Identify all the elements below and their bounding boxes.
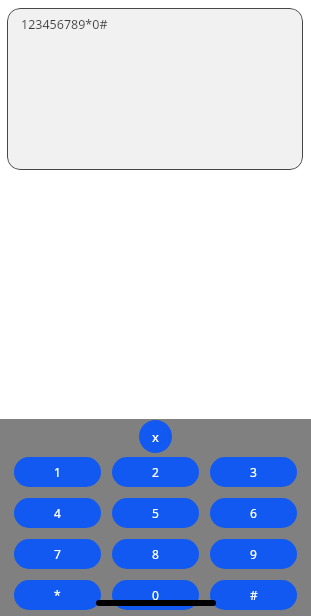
staticText: 3 xyxy=(250,464,257,480)
button[interactable]: 5 xyxy=(112,498,199,528)
staticText: 0 xyxy=(152,587,159,603)
button[interactable]: 2 xyxy=(112,457,199,487)
staticText: 1 xyxy=(54,464,61,480)
button[interactable]: x xyxy=(139,420,172,453)
staticText: 6 xyxy=(250,505,257,521)
staticText: * xyxy=(54,587,61,603)
button[interactable]: 3 xyxy=(210,457,297,487)
button[interactable]: 4 xyxy=(14,498,101,528)
staticText: 9 xyxy=(250,546,257,562)
staticText: 7 xyxy=(54,546,61,562)
staticText: 123456789*0# xyxy=(21,16,108,33)
staticText: 4 xyxy=(54,505,61,521)
staticText: # xyxy=(250,587,258,603)
button[interactable]: 0 xyxy=(112,580,199,610)
button[interactable]: 9 xyxy=(210,539,297,569)
button[interactable]: 6 xyxy=(210,498,297,528)
staticText: 5 xyxy=(152,505,159,521)
button[interactable]: # xyxy=(210,580,297,610)
button[interactable]: * xyxy=(14,580,101,610)
button[interactable]: 7 xyxy=(14,539,101,569)
staticText: x xyxy=(152,428,159,446)
button[interactable]: 8 xyxy=(112,539,199,569)
staticText: 2 xyxy=(152,464,159,480)
button[interactable]: 1 xyxy=(14,457,101,487)
staticText: 8 xyxy=(152,546,159,562)
